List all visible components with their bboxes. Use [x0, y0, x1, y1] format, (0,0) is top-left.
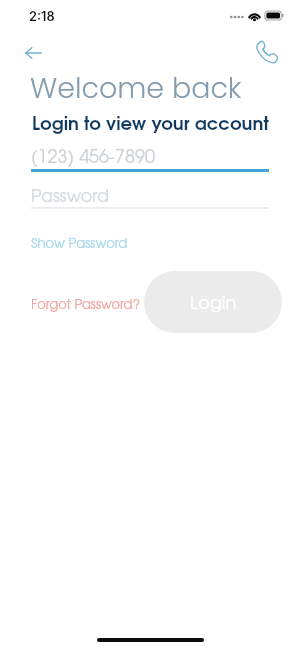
- staticText: Password: [31, 189, 110, 205]
- staticText: Welcome back: [30, 68, 242, 108]
- staticText: Forgot Password?: [31, 299, 141, 311]
- staticText: Show Password: [31, 238, 128, 250]
- button[interactable]: Back: [15, 34, 52, 71]
- staticText: Login to view your account: [32, 117, 269, 134]
- staticText: 2:18: [29, 9, 55, 24]
- button[interactable]: Show Password: [28, 235, 131, 253]
- button[interactable]: Login: [144, 271, 282, 333]
- button[interactable]: Call support: [247, 33, 285, 71]
- button[interactable]: Forgot Password?: [28, 296, 144, 314]
- staticText: (123) 456-7890: [31, 150, 155, 167]
- staticText: Login: [190, 296, 237, 313]
